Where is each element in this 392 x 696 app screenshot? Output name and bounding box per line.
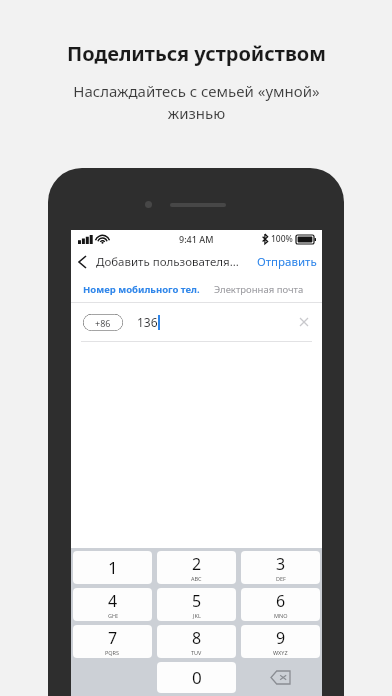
button[interactable]: Backspace	[241, 662, 320, 693]
staticText: MNO	[274, 612, 288, 619]
staticText: ABC	[191, 575, 202, 582]
staticText: 8	[192, 627, 202, 649]
staticText: 2	[192, 553, 202, 575]
staticText: DEF	[276, 575, 286, 582]
staticText: 0	[192, 666, 202, 689]
staticText: PQRS	[105, 649, 120, 656]
staticText: 4	[108, 590, 118, 612]
button[interactable]: +86	[83, 314, 123, 331]
button[interactable]: 3	[241, 551, 320, 584]
staticText: WXYZ	[273, 649, 288, 656]
button[interactable]: 4	[73, 588, 152, 621]
staticText: JKL	[193, 612, 201, 619]
staticText: Добавить пользователя...	[96, 254, 239, 270]
staticText: Номер мобильного тел.	[83, 283, 200, 296]
button[interactable]: Электронная почта	[214, 283, 304, 296]
staticText: 9:41 AM	[179, 233, 214, 245]
staticText: 5	[192, 590, 202, 612]
button[interactable]: 7	[73, 625, 152, 658]
button[interactable]: 2	[157, 551, 236, 584]
button[interactable]: Номер мобильного тел.	[83, 283, 200, 296]
staticText: 7	[108, 627, 118, 649]
staticText: 136	[137, 314, 158, 330]
staticText: 9	[276, 627, 286, 649]
staticText: 100%	[271, 233, 293, 245]
staticText: Отправить	[257, 254, 317, 270]
staticText: 6	[276, 590, 286, 612]
staticText: Поделиться устройством	[67, 40, 326, 67]
button[interactable]: 9	[241, 625, 320, 658]
staticText: GHI	[108, 612, 118, 619]
button[interactable]: 5	[157, 588, 236, 621]
staticText: 3	[276, 553, 286, 575]
button[interactable]: 8	[157, 625, 236, 658]
button[interactable]: 0	[157, 662, 236, 693]
staticText: 1	[108, 556, 118, 579]
staticText: Наслаждайтесь с семьей «умной» жизнью	[73, 81, 320, 124]
staticText: Электронная почта	[214, 283, 304, 296]
button[interactable]: 1	[73, 551, 152, 584]
staticText: TUV	[191, 649, 202, 656]
button[interactable]: 6	[241, 588, 320, 621]
button[interactable]: Clear	[296, 314, 312, 330]
button[interactable]: Back	[71, 248, 93, 276]
staticText: +86	[95, 317, 111, 329]
button[interactable]: Отправить	[257, 254, 317, 270]
